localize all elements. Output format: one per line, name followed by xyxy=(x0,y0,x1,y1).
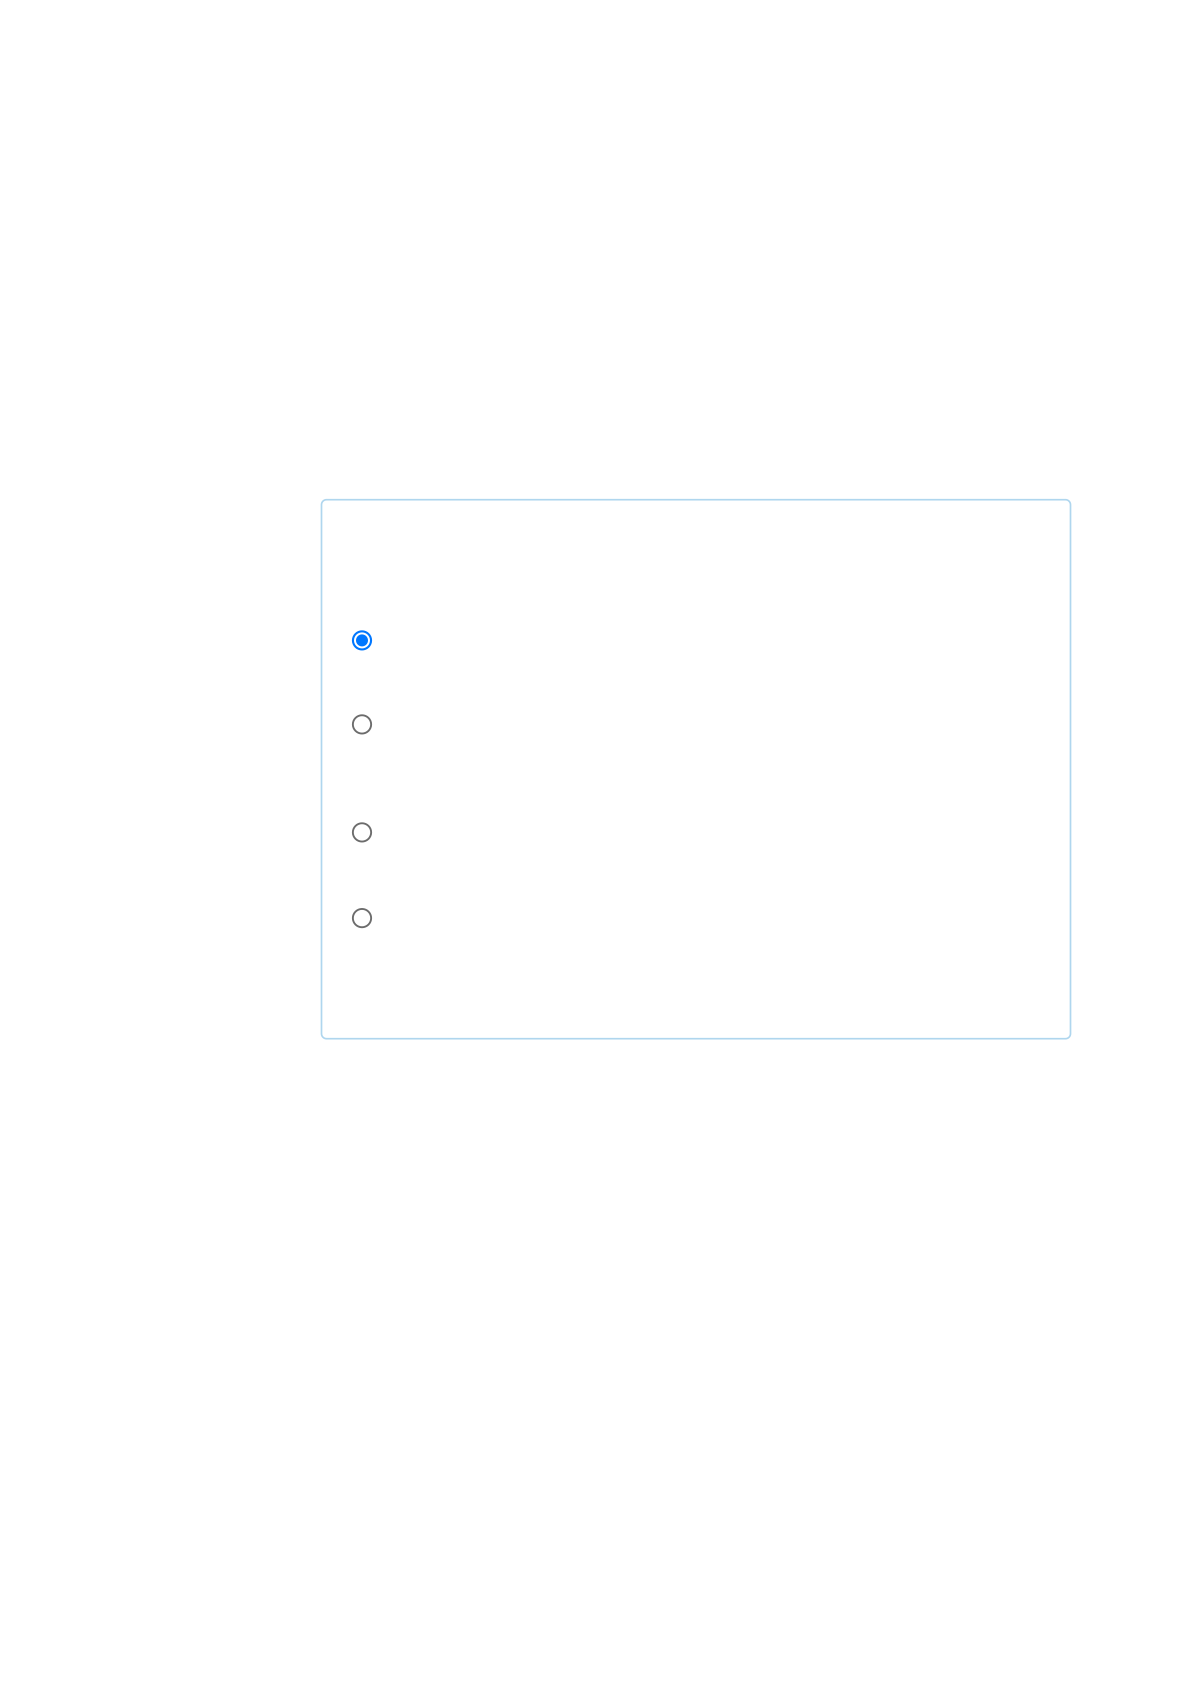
button[interactable]: Option 3 xyxy=(350,820,374,844)
button[interactable]: Option 2 xyxy=(350,712,374,736)
button[interactable]: Option 1, selected xyxy=(350,628,374,652)
button[interactable]: Option 4 xyxy=(350,906,374,930)
